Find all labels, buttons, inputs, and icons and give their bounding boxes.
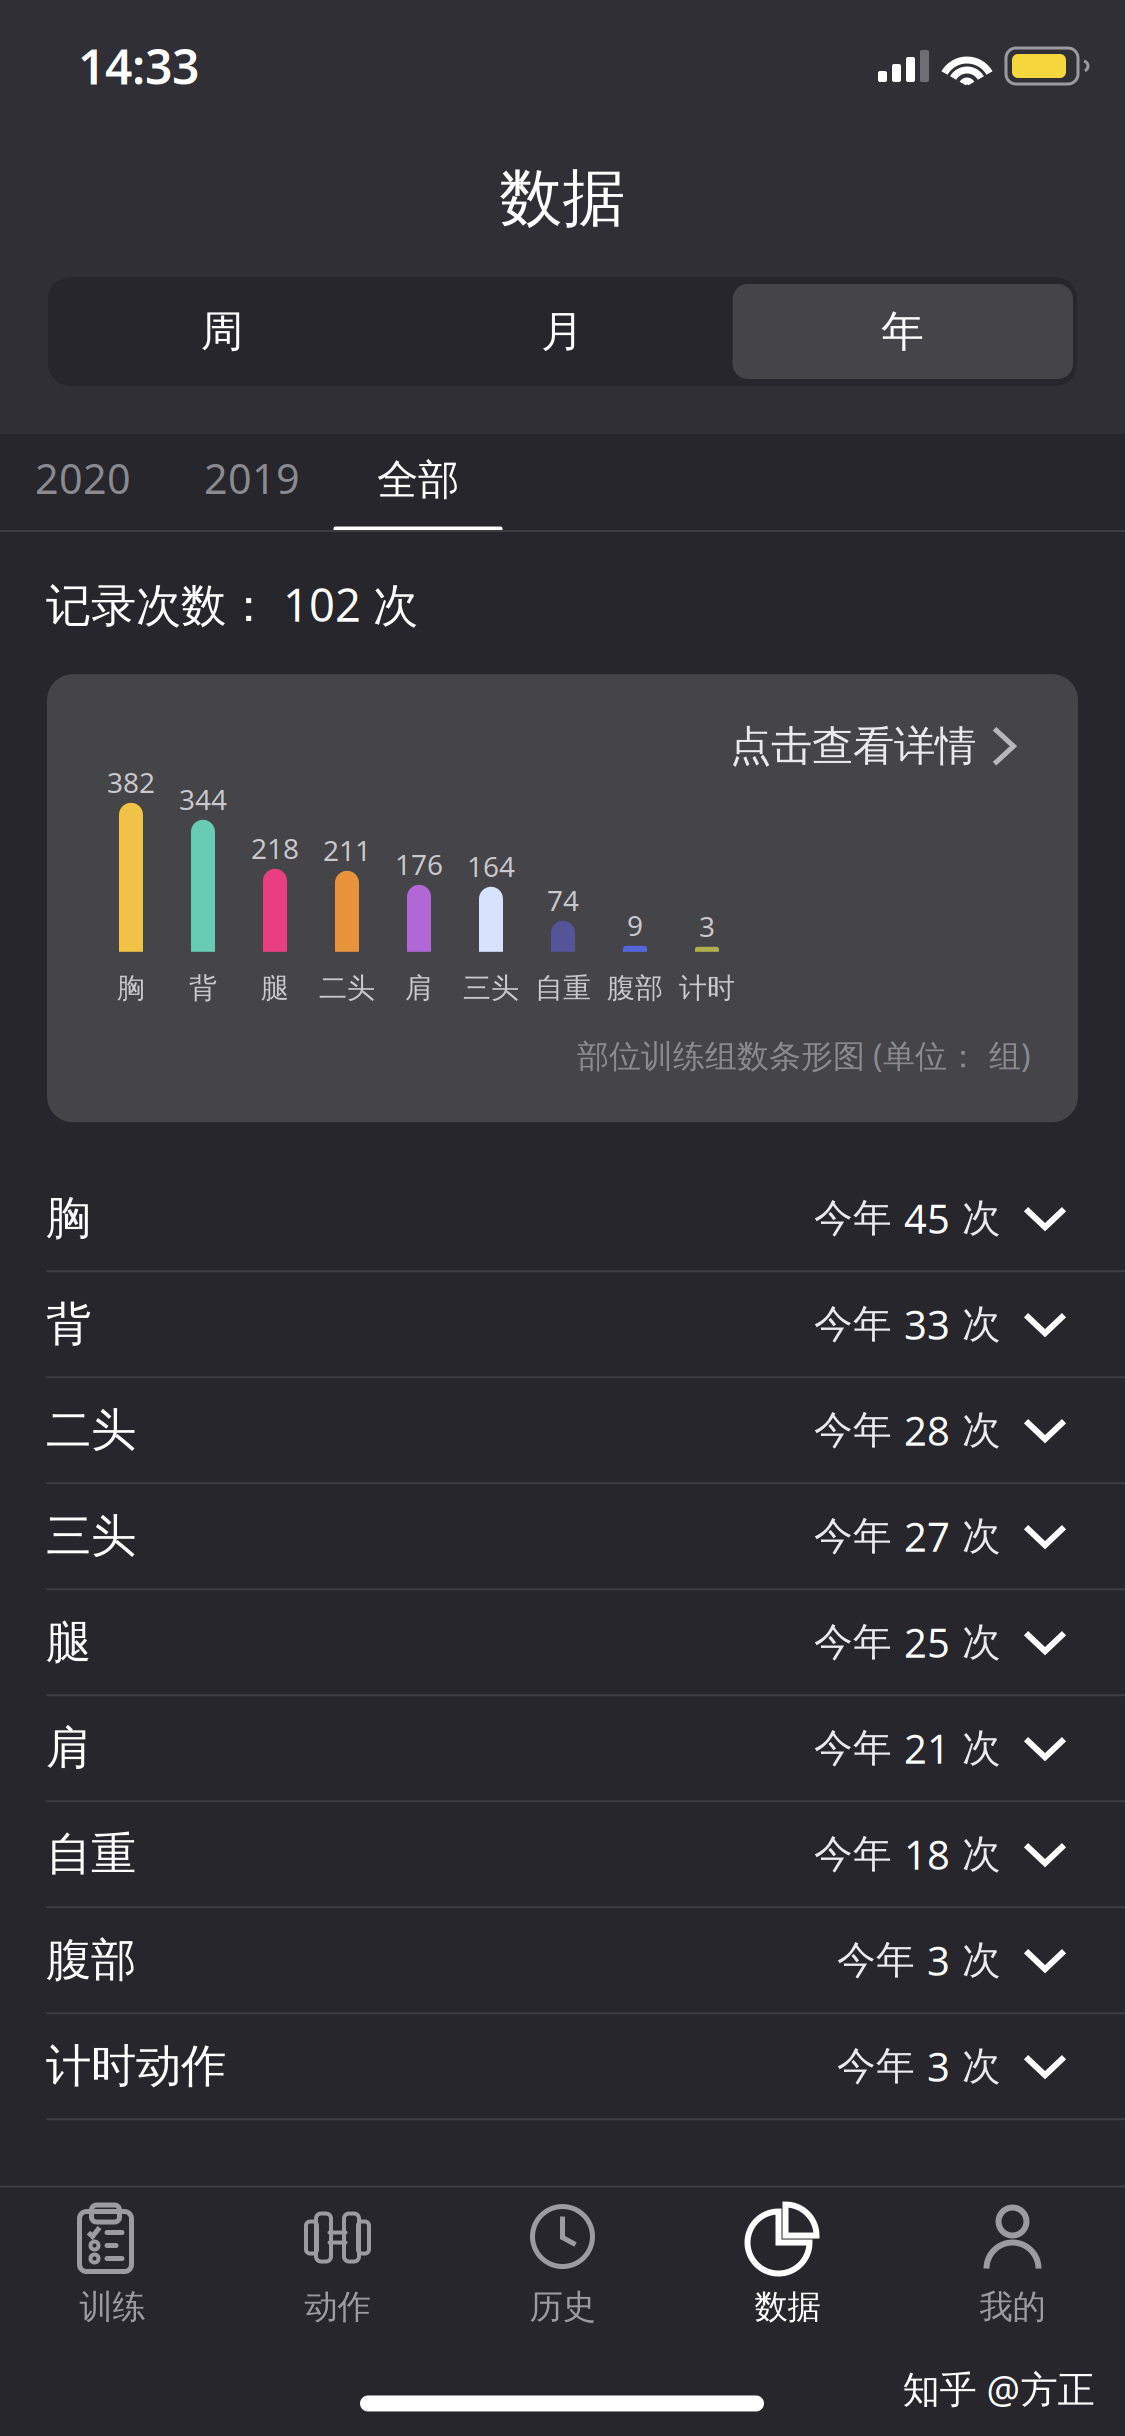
staticText: 今年 [814,1618,904,1666]
staticText: 382 [107,764,155,801]
staticText: 176 [395,846,443,883]
staticText: 腹部 [46,1932,136,1988]
button[interactable]: 训练 [0,2197,225,2327]
staticText: 3 [927,1934,950,1987]
staticText: 历史 [529,2286,595,2327]
staticText: 训练 [79,2286,145,2327]
staticText: 自重 [535,971,591,1005]
button[interactable]: 背 [0,1272,1125,1378]
staticText: 今年 [814,1830,904,1878]
button[interactable]: 全部 [328,433,508,546]
staticText: 次 [950,1724,1001,1772]
staticText: 点击查看详情 [730,721,976,772]
staticText: 3 [927,2040,950,2093]
staticText: 今年 [837,2042,927,2090]
staticText: 28 [904,1404,950,1457]
staticText: 25 [904,1616,950,1669]
button[interactable]: 动作 [225,2197,450,2327]
staticText: 今年 [814,1194,904,1242]
staticText: 数据 [499,160,625,237]
staticText: 3 [699,908,715,945]
staticText: 肩 [405,971,433,1005]
staticText: 胸 [117,971,145,1005]
button[interactable]: 胸 [0,1166,1125,1272]
staticText: 33 [904,1298,950,1351]
button[interactable]: 肩 [0,1696,1125,1802]
staticText: 次 [950,1830,1001,1878]
staticText: 月 [541,305,584,358]
button[interactable]: 历史 [450,2197,675,2327]
staticText: 次 [950,1936,1001,1984]
staticText: 2020 [35,451,131,505]
staticText: 45 [904,1192,950,1245]
staticText: 自重 [46,1826,136,1882]
staticText: 次 [950,1406,1001,1454]
button[interactable]: 数据 [675,2197,900,2327]
staticText: 腿 [46,1614,91,1670]
staticText: 周 [201,305,244,358]
staticText: 218 [251,830,299,867]
button[interactable]: 2020 [0,430,166,526]
staticText: 74 [547,882,579,919]
staticText: 二头 [319,971,375,1005]
button[interactable]: 周 [52,284,392,379]
staticText: 全部 [377,455,459,505]
staticText: 计时 [679,971,735,1005]
staticText: 今年 [814,1300,904,1348]
staticText: 三头 [46,1508,136,1564]
staticText: 数据 [754,2286,820,2327]
staticText: 我的 [979,2286,1045,2327]
staticText: 三头 [463,971,519,1005]
staticText: 知乎 @方正 [902,2364,1094,2413]
staticText: 今年 [814,1724,904,1772]
staticText: 腿 [261,971,289,1005]
button[interactable]: 二头 [0,1378,1125,1484]
staticText: 今年 [814,1406,904,1454]
staticText: 344 [179,781,227,818]
button[interactable]: 腿 [0,1590,1125,1696]
staticText: 211 [323,832,371,869]
staticText: 2019 [204,451,300,505]
staticText: 次 [950,1512,1001,1560]
staticText: 21 [904,1722,950,1775]
button[interactable]: 点击查看详情 [0,674,1125,1122]
staticText: 胸 [46,1190,91,1246]
staticText: 计时动作 [46,2038,226,2094]
staticText: 腹部 [607,971,663,1005]
staticText: 二头 [46,1402,136,1458]
staticText: 次 [950,1618,1001,1666]
staticText: 部位训练组数条形图 (单位： 组) [577,1034,1031,1076]
staticText: 记录次数： 102 次 [46,574,418,634]
staticText: 动作 [304,2286,370,2327]
button[interactable]: 计时动作 [0,2014,1125,2120]
button[interactable]: 2019 [169,430,335,526]
staticText: 背 [46,1296,91,1352]
staticText: 今年 [837,1936,927,1984]
staticText: 背 [189,971,217,1005]
button[interactable]: 我的 [900,2197,1125,2327]
staticText: 次 [950,1300,1001,1348]
button[interactable]: 腹部 [0,1908,1125,2014]
staticText: 次 [950,1194,1001,1242]
button[interactable]: 月 [392,284,733,379]
button[interactable]: 三头 [0,1484,1125,1590]
staticText: 次 [950,2042,1001,2090]
button[interactable]: 年 [733,284,1073,379]
staticText: 年 [881,305,924,358]
staticText: 今年 [814,1512,904,1560]
staticText: 27 [904,1510,950,1563]
staticText: 9 [627,907,643,944]
staticText: 肩 [46,1720,91,1776]
staticText: 18 [904,1828,950,1881]
button[interactable]: 自重 [0,1802,1125,1908]
staticText: 164 [467,848,515,885]
staticText: 14:33 [78,34,199,98]
